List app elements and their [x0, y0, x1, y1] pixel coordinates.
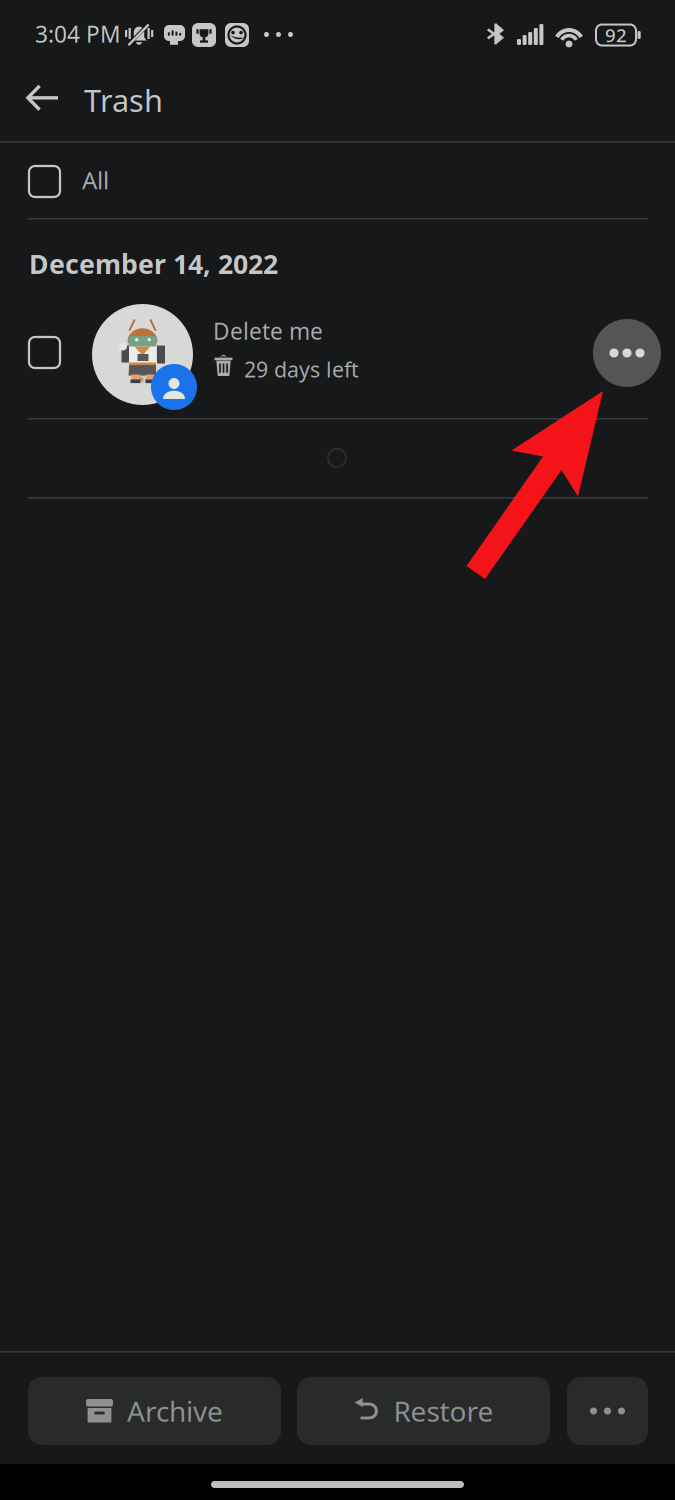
button[interactable]: More options: [567, 1377, 648, 1445]
button[interactable]: More options: [593, 319, 661, 387]
button[interactable]: All: [0, 143, 675, 219]
button[interactable]: Archive: [28, 1377, 281, 1445]
staticText: All: [82, 164, 109, 196]
staticText: Restore: [393, 1392, 493, 1430]
staticText: 92: [605, 23, 627, 47]
staticText: Delete me: [213, 316, 323, 346]
button[interactable]: Back: [2, 60, 82, 136]
button[interactable]: Delete me: [0, 295, 675, 419]
staticText: 3:04 PM: [35, 19, 121, 49]
staticText: 29 days left: [244, 355, 359, 383]
staticText: Archive: [127, 1392, 223, 1430]
button[interactable]: Restore: [297, 1377, 550, 1445]
button[interactable]: Trash: [84, 67, 244, 133]
staticText: Trash: [84, 80, 163, 120]
staticText: December 14, 2022: [29, 246, 278, 281]
